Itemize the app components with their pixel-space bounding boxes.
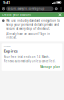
- button[interactable]: Site information: [1, 5, 6, 12]
- button[interactable]: Menu: [59, 5, 63, 12]
- staticText: Manage plan: [40, 65, 60, 69]
- staticText: Create your account: [2, 13, 31, 16]
- staticText: Expires: [4, 48, 18, 54]
- staticText: Already have an account? Sign in instead…: [6, 32, 50, 39]
- staticText: Your free trial ends on 14 March.: [4, 55, 50, 59]
- staticText: ACCOUNT: [4, 46, 11, 47]
- button[interactable]: Account: [53, 5, 59, 12]
- staticText: secure.example.com/signup: [8, 7, 45, 10]
- staticText: Renews automatically unless cancelled.: [4, 59, 56, 63]
- staticText: 9:41: [3, 0, 10, 5]
- button[interactable]: Manage plan: [40, 65, 60, 69]
- button[interactable]: Close: [57, 12, 62, 17]
- staticText: We use industry standard encryption to k…: [6, 19, 60, 30]
